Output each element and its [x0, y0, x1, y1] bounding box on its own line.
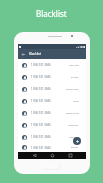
button[interactable]: Add number: [73, 137, 81, 145]
staticText: Ireland Cafe: [66, 88, 79, 91]
staticText: 1 806 921 0846: [31, 75, 51, 79]
staticText: Flea Shop: [69, 64, 79, 67]
button[interactable]: 1 806 921 0846: [18, 59, 86, 71]
staticText: 1 806 921 0846: [31, 99, 51, 103]
staticText: Eclipse: [71, 146, 79, 149]
button[interactable]: 1 806 921 0846: [18, 71, 86, 83]
button[interactable]: Home: [49, 152, 55, 159]
button[interactable]: 1 806 921 0846: [18, 107, 86, 119]
button[interactable]: 1 806 921 0846: [18, 119, 86, 131]
staticText: 1 806 921 0846: [31, 87, 51, 91]
staticText: 1 806 921 0846: [31, 135, 51, 139]
button[interactable]: Back: [31, 152, 37, 159]
staticText: Blacklist: [29, 52, 41, 56]
button[interactable]: Blacklist: [0, 0, 103, 26]
button[interactable]: Back: [20, 49, 27, 59]
button[interactable]: 1 806 921 0846: [18, 95, 86, 107]
staticText: 1 806 921 0846: [31, 123, 51, 127]
staticText: 1 806 921 0846: [31, 63, 51, 67]
staticText: Flea Shop: [69, 136, 79, 139]
staticText: Alexander: [68, 124, 79, 127]
button[interactable]: 1 806 921 0846: [18, 83, 86, 95]
button[interactable]: 1 806 921 0846: [18, 143, 86, 152]
staticText: 1 806 921 0846: [31, 111, 51, 115]
button[interactable]: Recent apps: [67, 152, 73, 159]
staticText: 1 806 921 0846: [31, 146, 51, 150]
button[interactable]: 1 806 921 0846: [18, 131, 86, 143]
staticText: Blacklist: [36, 8, 67, 19]
staticText: Corey: [73, 100, 79, 103]
staticText: Eclipse: [71, 76, 79, 79]
staticText: Beverly Cafe: [66, 112, 79, 115]
